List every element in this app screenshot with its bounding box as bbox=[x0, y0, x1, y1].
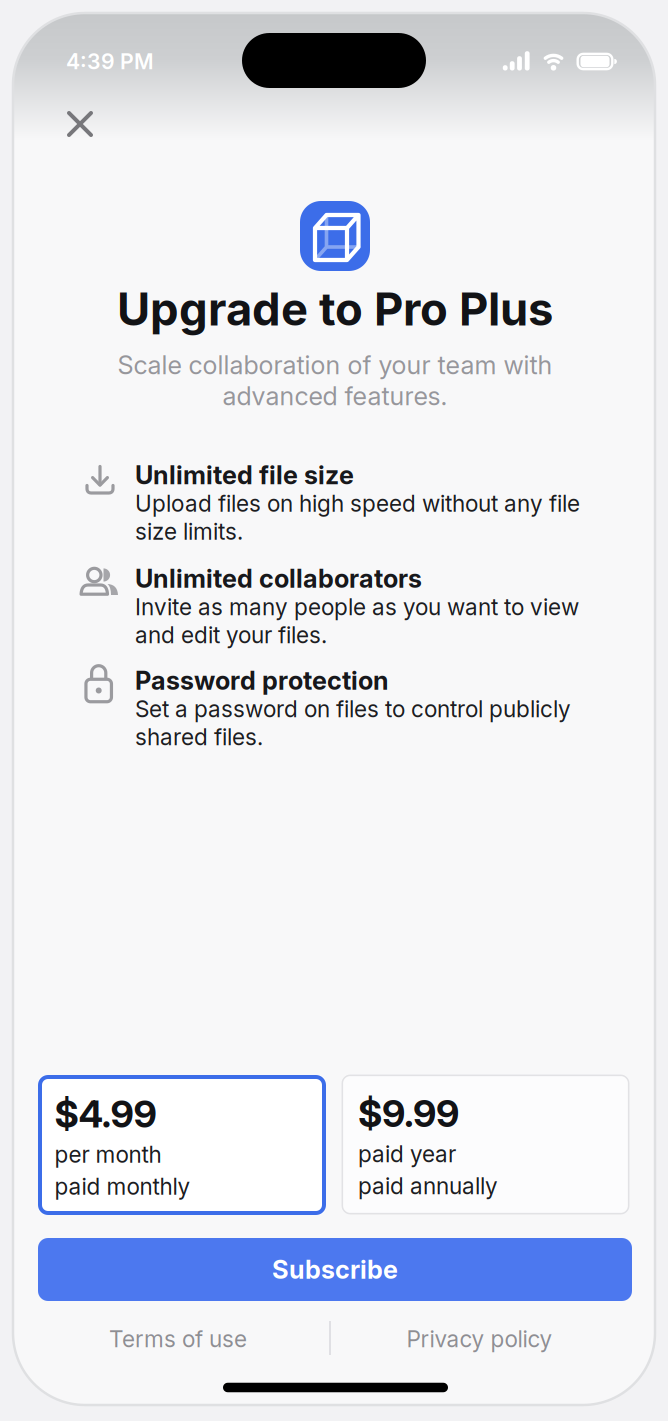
staticText: paid year bbox=[358, 1141, 456, 1167]
staticText: $9.99 bbox=[358, 1091, 459, 1135]
staticText: shared files. bbox=[135, 724, 263, 750]
staticText: Unlimited collaborators bbox=[135, 564, 422, 593]
button[interactable]: Subscribe bbox=[38, 1238, 632, 1301]
staticText: Invite as many people as you want to vie… bbox=[135, 594, 579, 620]
staticText: Privacy policy bbox=[406, 1326, 552, 1352]
staticText: advanced features. bbox=[222, 381, 447, 411]
button[interactable]: $9.99 bbox=[341, 1074, 629, 1214]
staticText: Unlimited file size bbox=[135, 460, 354, 490]
staticText: $4.99 bbox=[54, 1092, 156, 1136]
staticText: per month bbox=[54, 1141, 161, 1168]
staticText: Subscribe bbox=[272, 1255, 398, 1284]
staticText: size limits. bbox=[135, 518, 243, 545]
staticText: Scale collaboration of your team with bbox=[117, 350, 552, 380]
staticText: Terms of use bbox=[109, 1326, 247, 1352]
button[interactable]: $4.99 bbox=[38, 1075, 326, 1215]
staticText: Upload files on high speed without any f… bbox=[135, 490, 580, 517]
staticText: Upgrade to Pro Plus bbox=[117, 282, 553, 336]
staticText: Set a password on files to control publi… bbox=[135, 696, 571, 722]
button[interactable]: Terms of use bbox=[58, 1317, 298, 1361]
staticText: and edit your files. bbox=[135, 622, 327, 648]
button[interactable]: Close bbox=[43, 87, 117, 161]
staticText: 4:39 PM bbox=[66, 49, 154, 74]
button[interactable]: Privacy policy bbox=[359, 1317, 599, 1361]
staticText: paid monthly bbox=[54, 1173, 190, 1200]
staticText: paid annually bbox=[358, 1173, 498, 1199]
staticText: Password protection bbox=[135, 666, 389, 695]
